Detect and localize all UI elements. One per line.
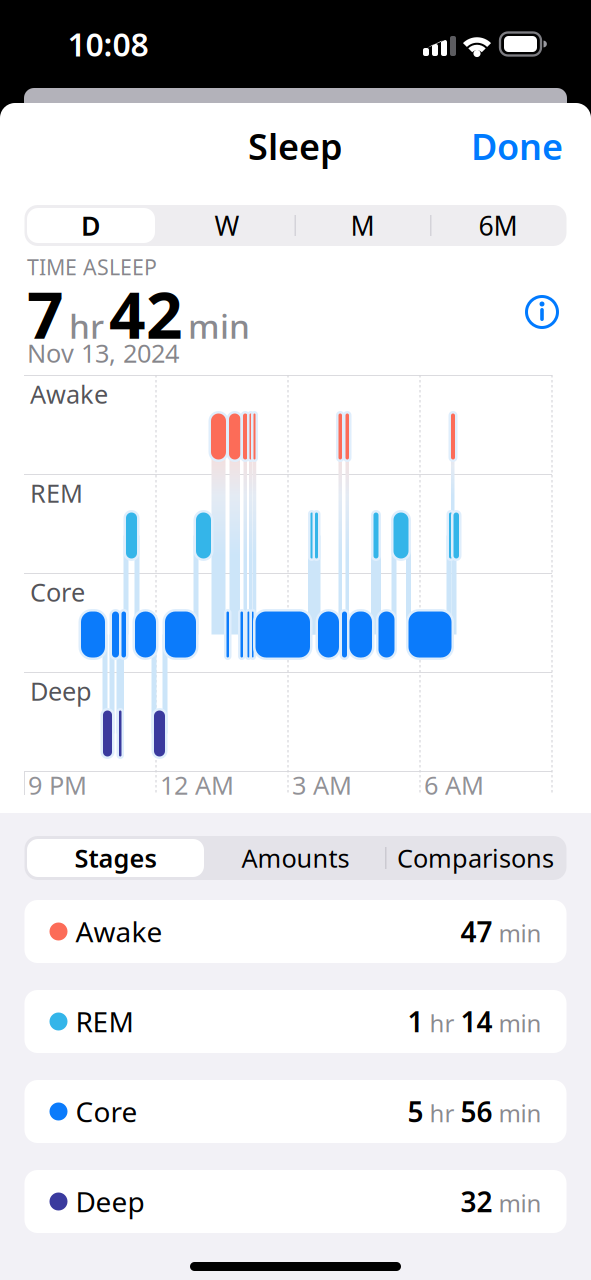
staticText: 9 PM [28,768,87,802]
staticText: Comparisons [397,841,554,875]
staticText: Sleep [248,122,343,170]
button[interactable]: Stages [27,839,204,877]
button[interactable]: REM [24,990,566,1053]
staticText: min [492,1097,541,1129]
staticText: REM [30,476,83,510]
button[interactable]: M [296,205,428,246]
button[interactable]: 6M [432,205,564,246]
button[interactable]: About Sleep [524,294,560,330]
staticText: 10:08 [67,23,148,65]
button[interactable]: Comparisons [387,836,563,880]
staticText: min [492,1007,541,1039]
staticText: Nov 13, 2024 [27,336,179,370]
staticText: Deep [30,674,92,708]
button[interactable]: Deep [24,1170,566,1233]
staticText: M [350,208,374,243]
staticText: D [81,208,101,243]
staticText: min [492,1187,541,1219]
staticText: 6M [478,208,517,243]
button[interactable]: Amounts [207,836,383,880]
staticText: 42 [109,271,183,356]
staticText: 6 AM [424,768,484,802]
staticText: REM [75,1003,133,1040]
staticText: Stages [74,841,156,875]
button[interactable]: D [27,208,155,243]
staticText: Deep [75,1183,144,1220]
staticText: 12 AM [160,768,234,802]
staticText: min [188,304,250,348]
staticText: hr [69,304,104,348]
staticText: 47 [460,913,492,950]
staticText: 56 [460,1093,492,1130]
staticText: 32 [460,1183,492,1220]
staticText: TIME ASLEEP [27,253,157,281]
button[interactable]: Awake [24,900,566,963]
staticText: 14 [460,1003,492,1040]
staticText: W [214,208,239,243]
staticText: Amounts [241,841,349,875]
staticText: 5 [407,1093,423,1130]
staticText: hr [423,1007,460,1039]
staticText: Core [30,575,85,609]
button[interactable]: W [161,205,293,246]
staticText: Done [471,122,563,170]
staticText: Awake [30,377,108,411]
staticText: 1 [407,1003,423,1040]
staticText: Awake [75,913,162,950]
button[interactable]: Core [24,1080,566,1143]
staticText: Core [75,1093,137,1130]
staticText: hr [423,1097,460,1129]
staticText: 7 [27,271,64,356]
staticText: min [492,917,541,949]
staticText: 3 AM [292,768,352,802]
button[interactable]: Done [423,122,563,170]
